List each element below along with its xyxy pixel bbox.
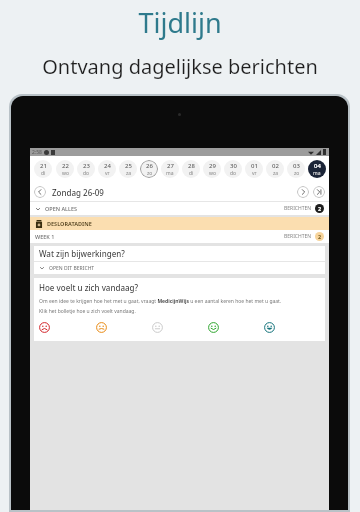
button[interactable]: Naar laatste dag — [313, 186, 325, 198]
staticText: vr — [105, 170, 110, 177]
staticText: Tijdlijn — [0, 4, 360, 41]
button[interactable]: Volgende dag — [297, 186, 309, 198]
button[interactable]: 01 — [244, 160, 263, 178]
button[interactable]: OPEN DIT BERICHT — [39, 262, 320, 274]
staticText: 25 — [125, 162, 132, 170]
staticText: do — [83, 170, 90, 177]
staticText: 01 — [251, 162, 258, 170]
staticText: do — [230, 170, 237, 177]
staticText: 21 — [40, 162, 47, 170]
staticText: wo — [62, 170, 69, 177]
staticText: 27 — [167, 162, 174, 170]
staticText: vr — [252, 170, 257, 177]
button[interactable]: Stemming 2 van 5 — [96, 322, 152, 333]
staticText: 29 — [209, 162, 216, 170]
staticText: 04 — [314, 162, 321, 170]
button[interactable]: 04 — [307, 160, 326, 178]
button[interactable]: 02 — [265, 160, 284, 178]
button[interactable]: 28 — [181, 160, 200, 178]
staticText: 2 — [318, 205, 322, 212]
button[interactable]: OPEN ALLES — [35, 205, 77, 212]
staticText: WEEK 1 — [35, 233, 55, 240]
staticText: 26 — [146, 162, 153, 170]
staticText: di — [189, 170, 194, 177]
staticText: Hoe voelt u zich vandaag? — [39, 282, 139, 293]
staticText: BERICHTEN — [284, 205, 312, 212]
button[interactable]: 03 — [286, 160, 305, 178]
staticText: 28 — [188, 162, 195, 170]
button[interactable]: Stemming 1 van 5 — [39, 322, 96, 333]
button[interactable]: 23 — [76, 160, 95, 178]
button[interactable]: 30 — [223, 160, 242, 178]
staticText: DESLORATADINE — [47, 220, 92, 227]
staticText: 2:58 — [32, 149, 42, 156]
staticText: ma — [313, 170, 321, 177]
staticText: Zondag 26-09 — [52, 187, 104, 198]
staticText: ma — [166, 170, 174, 177]
button[interactable]: Vorige dag — [34, 186, 46, 198]
button[interactable]: 24 — [97, 160, 116, 178]
staticText: 2 — [318, 233, 322, 240]
staticText: BERICHTEN — [284, 233, 312, 240]
staticText: Wat zijn bijwerkingen? — [39, 248, 125, 259]
staticText: OPEN DIT BERICHT — [49, 265, 95, 272]
staticText: Om een idee te krijgen hoe het met u gaa… — [39, 298, 282, 305]
staticText: zo — [294, 170, 300, 177]
button[interactable]: Stemming 3 van 5 — [152, 322, 208, 333]
staticText: Ontvang dagelijkse berichten — [6, 53, 354, 80]
staticText: za — [273, 170, 279, 177]
staticText: wo — [209, 170, 216, 177]
button[interactable]: DESLORATADINE — [35, 217, 324, 230]
staticText: 30 — [230, 162, 237, 170]
staticText: 24 — [104, 162, 111, 170]
button[interactable]: 29 — [202, 160, 221, 178]
button[interactable]: Stemming 5 van 5 — [264, 322, 320, 333]
button[interactable]: 21 — [33, 160, 53, 178]
staticText: 02 — [272, 162, 279, 170]
staticText: 22 — [62, 162, 69, 170]
button[interactable]: 25 — [118, 160, 137, 178]
button[interactable]: 22 — [55, 160, 74, 178]
staticText: 03 — [293, 162, 300, 170]
staticText: 23 — [83, 162, 90, 170]
button[interactable]: 26 — [139, 160, 158, 178]
staticText: di — [41, 170, 46, 177]
staticText: zo — [147, 170, 153, 177]
button[interactable]: 27 — [160, 160, 179, 178]
staticText: Klik het bolletje hoe u zich voelt vanda… — [39, 308, 136, 315]
staticText: za — [126, 170, 132, 177]
button[interactable]: Stemming 4 van 5 — [208, 322, 264, 333]
staticText: OPEN ALLES — [45, 205, 77, 212]
